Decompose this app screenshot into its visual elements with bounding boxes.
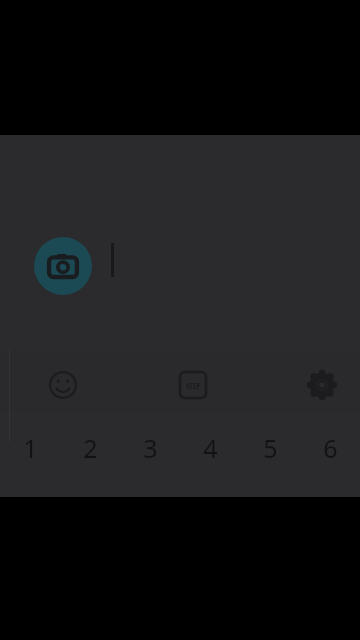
button[interactable]: GIF: [171, 363, 215, 407]
staticText: GIF: [186, 379, 201, 391]
button[interactable]: 2: [60, 420, 120, 476]
button[interactable]: Emoji: [41, 363, 85, 407]
staticText: 2: [83, 431, 98, 465]
button[interactable]: 6: [300, 420, 360, 476]
staticText: 5: [263, 431, 278, 465]
button[interactable]: Settings: [300, 363, 344, 407]
staticText: 4: [203, 431, 218, 465]
button[interactable]: Camera: [34, 237, 92, 295]
button[interactable]: 3: [120, 420, 180, 476]
staticText: 6: [323, 431, 338, 465]
button[interactable]: 4: [180, 420, 240, 476]
staticText: 3: [143, 431, 158, 465]
staticText: 1: [23, 431, 38, 465]
button[interactable]: 5: [240, 420, 300, 476]
